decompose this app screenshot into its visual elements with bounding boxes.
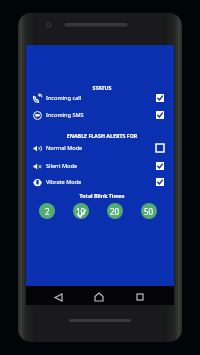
button[interactable]: Back	[51, 290, 65, 304]
staticText: 2	[45, 206, 50, 217]
button[interactable]: 20	[107, 203, 123, 219]
staticText: 10	[76, 206, 86, 217]
staticText: STATUS	[28, 84, 176, 91]
button[interactable]: Recents	[133, 290, 147, 304]
staticText: ENABLE FLASH ALERTS FOR	[28, 132, 176, 139]
button[interactable]: Normal Mode	[26, 140, 174, 156]
staticText: 50	[144, 206, 154, 217]
button[interactable]: Toggle	[156, 144, 164, 152]
button[interactable]: Incoming call	[26, 90, 174, 106]
button[interactable]: Vibrate Mode	[26, 174, 174, 190]
button[interactable]: Toggle	[156, 162, 164, 170]
staticText: Vibrate Mode	[46, 178, 82, 186]
button[interactable]: 2	[39, 203, 55, 219]
staticText: Incoming SMS	[46, 111, 84, 119]
staticText: Normal Mode	[46, 144, 83, 152]
button[interactable]: 50	[141, 203, 157, 219]
staticText: Incoming call	[46, 94, 82, 102]
button[interactable]: Toggle	[156, 178, 164, 186]
button[interactable]: Silent Mode	[26, 158, 174, 174]
staticText: Silent Mode	[46, 162, 78, 170]
button[interactable]: Toggle	[156, 94, 164, 102]
button[interactable]: Toggle	[156, 111, 164, 119]
staticText: Total Blink Times	[28, 192, 176, 199]
button[interactable]: Home	[92, 290, 106, 304]
staticText: 20	[110, 206, 120, 217]
button[interactable]: 10	[73, 203, 89, 219]
button[interactable]: Incoming SMS	[26, 107, 174, 123]
